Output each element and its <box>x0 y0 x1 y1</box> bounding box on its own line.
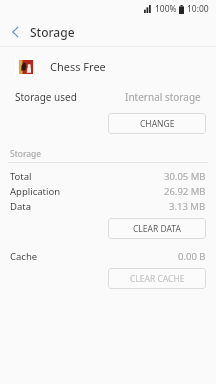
button[interactable]: Application <box>0 184 216 199</box>
staticText: CLEAR CACHE <box>130 273 185 285</box>
staticText: Application <box>10 185 61 198</box>
staticText: 100% <box>155 3 177 15</box>
staticText: CHANGE <box>140 118 175 130</box>
staticText: 10:00 <box>187 3 209 15</box>
staticText: Storage <box>30 24 75 40</box>
staticText: 0.00 B <box>178 250 206 263</box>
staticText: 26.92 MB <box>164 185 206 198</box>
staticText: Chess Free <box>50 59 106 74</box>
staticText: Data <box>10 200 32 213</box>
staticText: Storage <box>10 148 42 160</box>
button[interactable]: Back <box>0 18 30 45</box>
button[interactable]: Data <box>0 199 216 214</box>
staticText: CLEAR DATA <box>133 223 181 235</box>
staticText: Storage used <box>15 90 77 104</box>
button[interactable]: CLEAR CACHE <box>108 268 206 289</box>
button[interactable]: Storage used <box>0 85 216 109</box>
staticText: Cache <box>10 250 38 263</box>
staticText: Total <box>10 170 32 183</box>
button[interactable]: Total <box>0 169 216 184</box>
staticText: Internal storage <box>125 90 201 104</box>
button[interactable]: Cache <box>0 249 216 264</box>
button[interactable]: CLEAR DATA <box>108 218 206 239</box>
staticText: 3.13 MB <box>169 200 206 213</box>
button[interactable]: Chess Free <box>0 47 216 85</box>
button[interactable]: CHANGE <box>108 113 206 134</box>
staticText: 30.05 MB <box>164 170 206 183</box>
